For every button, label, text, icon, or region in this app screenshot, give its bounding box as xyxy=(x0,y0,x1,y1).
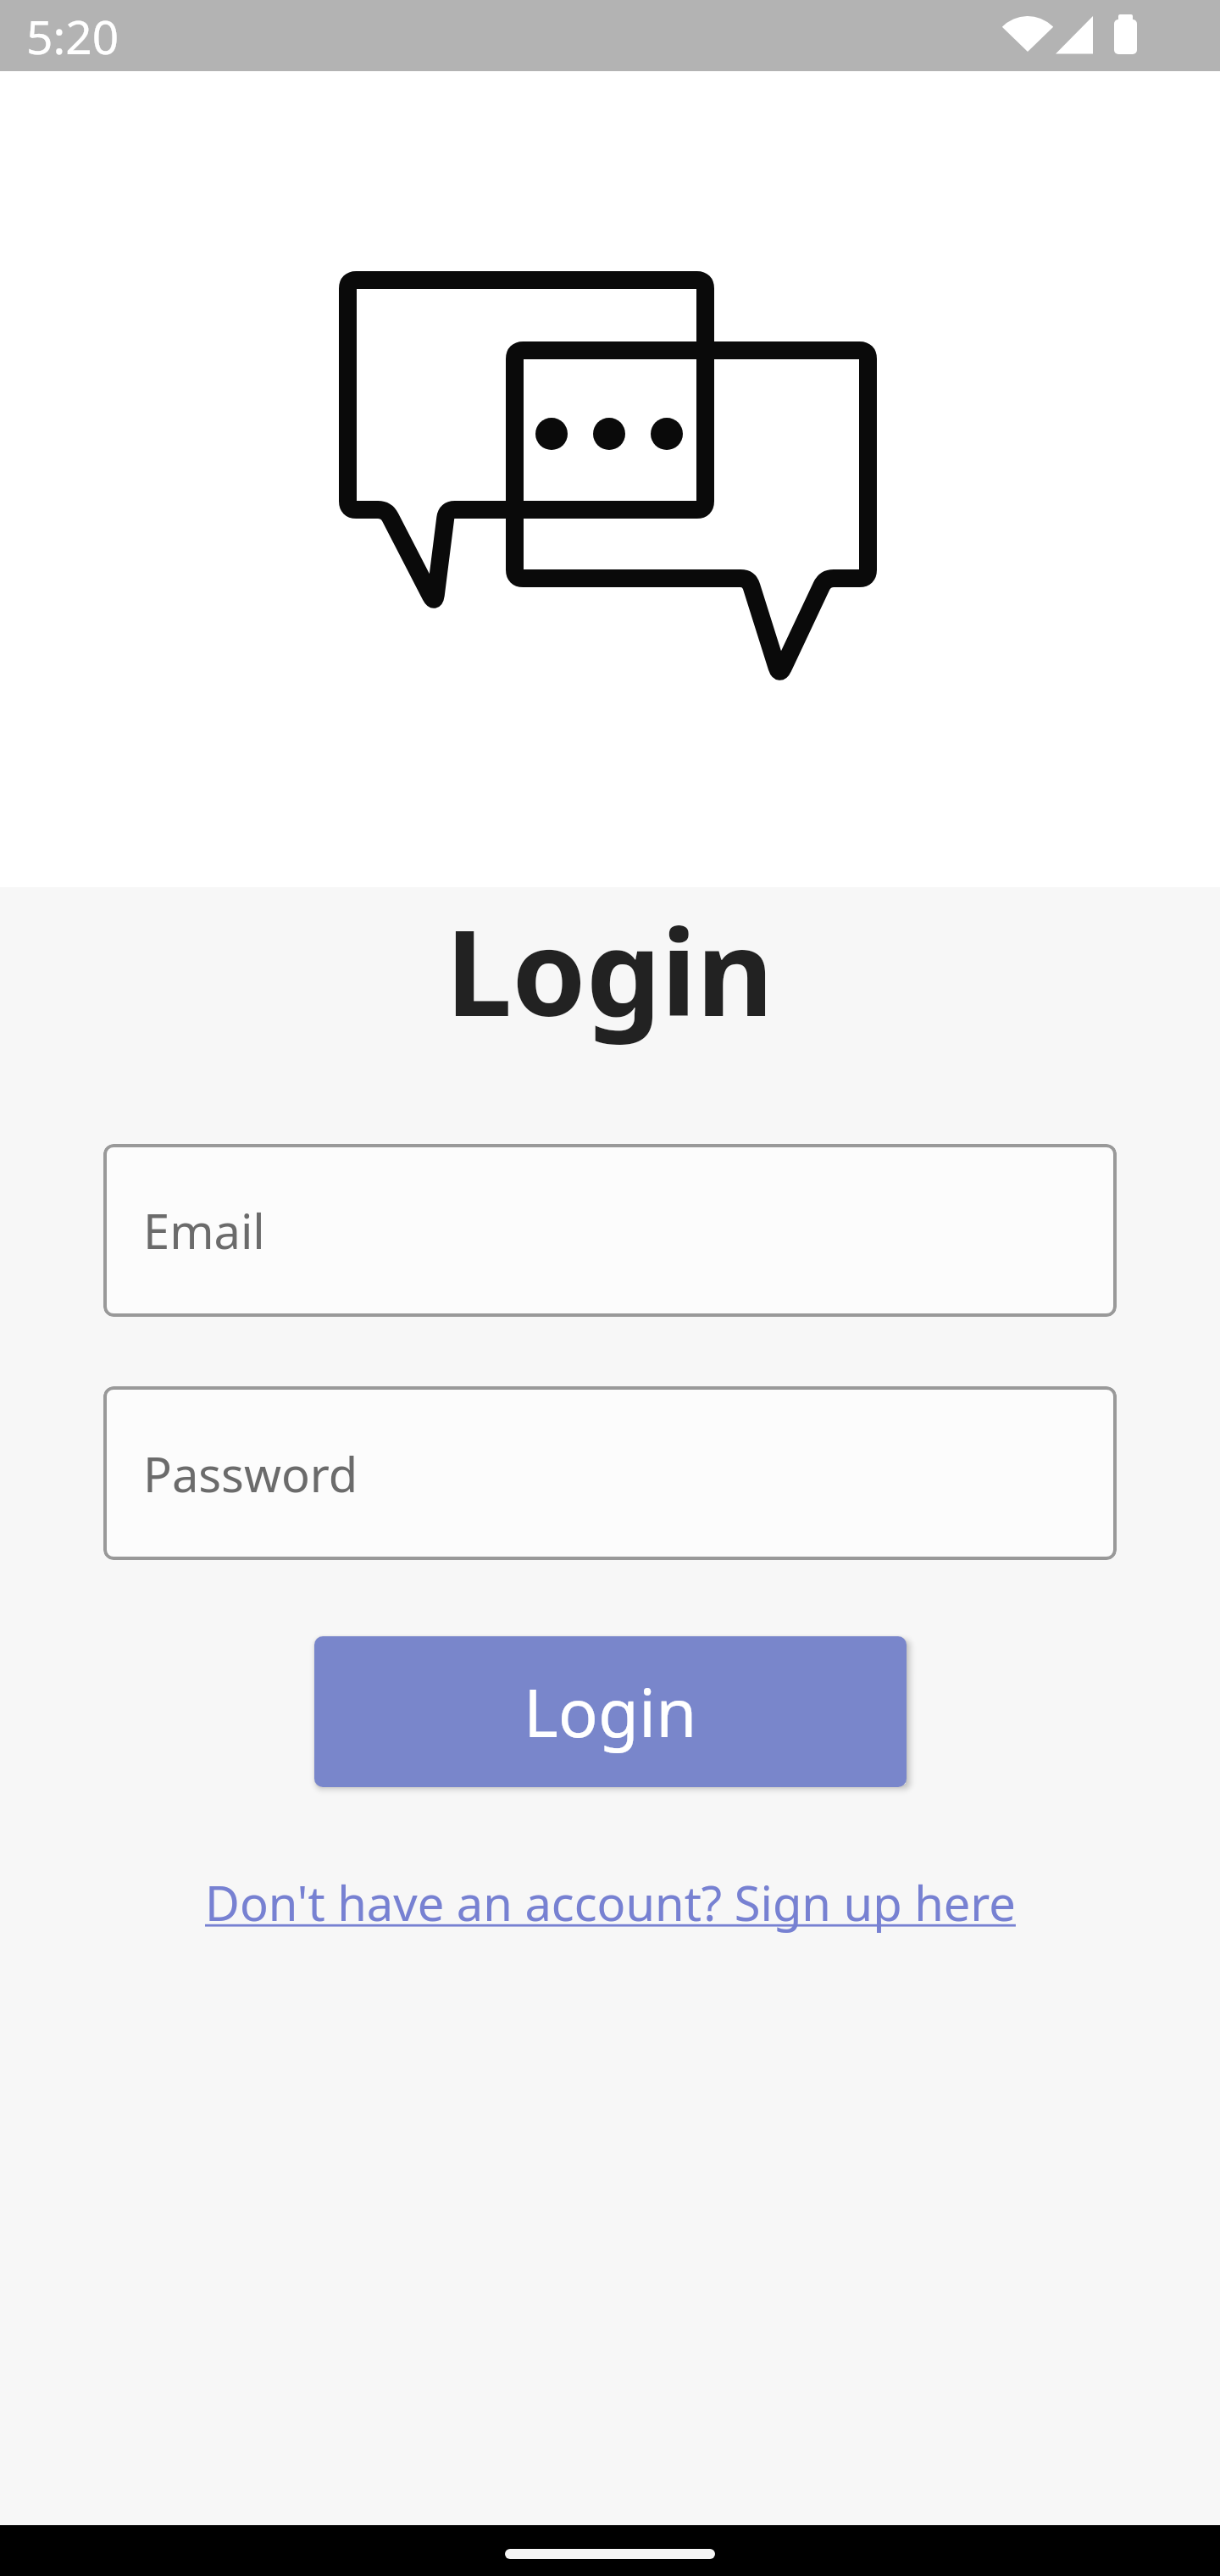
button[interactable]: Password xyxy=(103,1386,1117,1560)
button[interactable]: Don't have an account? Sign up here xyxy=(205,1870,1016,1935)
staticText: Email xyxy=(143,1198,265,1263)
staticText: Login xyxy=(524,1667,697,1757)
button[interactable]: Login xyxy=(314,1636,907,1787)
button[interactable]: Email xyxy=(103,1144,1117,1317)
staticText: Password xyxy=(143,1441,358,1506)
staticText: 5:20 xyxy=(26,4,119,68)
staticText: Login xyxy=(446,889,774,1051)
